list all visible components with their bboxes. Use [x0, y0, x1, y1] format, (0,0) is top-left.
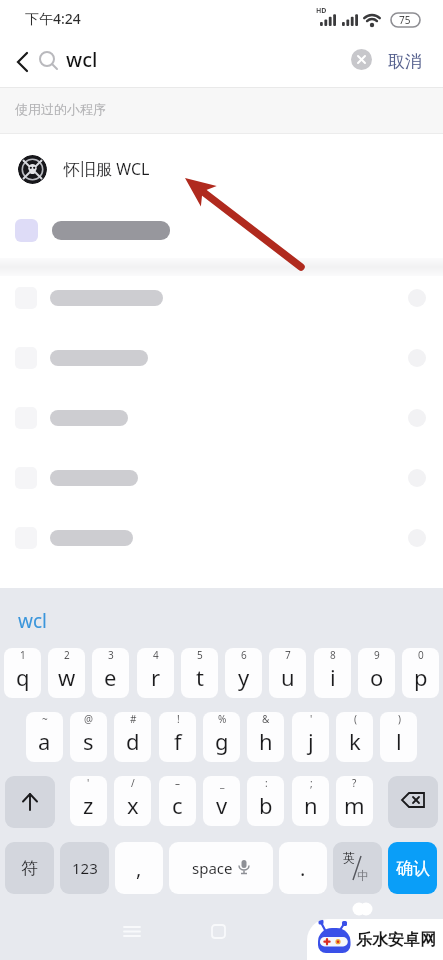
- button[interactable]: 符: [5, 842, 54, 894]
- button[interactable]: –: [159, 776, 196, 826]
- button[interactable]: 确认: [388, 842, 437, 894]
- staticText: ?: [352, 776, 357, 790]
- button[interactable]: 3: [92, 648, 129, 698]
- button[interactable]: [388, 776, 438, 828]
- staticText: q: [16, 662, 30, 692]
- button[interactable]: #: [114, 712, 151, 762]
- staticText: ,: [136, 855, 142, 882]
- button[interactable]: space: [169, 842, 273, 894]
- button[interactable]: ?: [336, 776, 373, 826]
- button[interactable]: [0, 276, 443, 336]
- button[interactable]: 4: [137, 648, 174, 698]
- staticText: ~: [42, 712, 48, 726]
- button[interactable]: :: [247, 776, 284, 826]
- button[interactable]: ': [70, 776, 107, 826]
- button[interactable]: [0, 396, 443, 456]
- staticText: ': [87, 776, 90, 790]
- staticText: 0: [418, 648, 424, 662]
- button[interactable]: ,: [115, 842, 163, 894]
- button[interactable]: %: [203, 712, 240, 762]
- button[interactable]: 5: [181, 648, 218, 698]
- staticText: 怀旧服 WCL: [64, 158, 150, 180]
- staticText: 乐水安卓网: [356, 930, 436, 950]
- button[interactable]: [0, 516, 443, 576]
- button[interactable]: 8: [314, 648, 351, 698]
- staticText: v: [216, 790, 228, 820]
- staticText: u: [281, 662, 295, 692]
- staticText: 符: [21, 858, 38, 879]
- button[interactable]: 0: [402, 648, 439, 698]
- staticText: /: [131, 776, 135, 790]
- staticText: i: [330, 662, 336, 692]
- button[interactable]: 1: [4, 648, 41, 698]
- button[interactable]: [0, 456, 443, 516]
- button[interactable]: _: [203, 776, 240, 826]
- staticText: HD: [316, 6, 327, 16]
- staticText: #: [130, 712, 137, 726]
- staticText: c: [172, 790, 183, 820]
- staticText: p: [414, 662, 428, 692]
- button[interactable]: [351, 49, 372, 70]
- staticText: l: [396, 726, 402, 756]
- button[interactable]: /: [114, 776, 151, 826]
- staticText: 中: [357, 868, 369, 883]
- button[interactable]: .: [279, 842, 327, 894]
- staticText: 英: [343, 850, 355, 865]
- staticText: 1: [20, 648, 26, 662]
- staticText: e: [104, 662, 117, 692]
- staticText: 123: [72, 858, 98, 878]
- staticText: 使用过的小程序: [15, 101, 106, 117]
- button[interactable]: 怀旧服 WCL: [0, 134, 443, 204]
- staticText: o: [370, 662, 384, 692]
- staticText: j: [308, 726, 314, 756]
- staticText: s: [83, 726, 94, 756]
- button[interactable]: 123: [60, 842, 109, 894]
- button[interactable]: 7: [269, 648, 306, 698]
- staticText: space: [192, 858, 233, 878]
- button[interactable]: [0, 336, 443, 396]
- button[interactable]: @: [70, 712, 107, 762]
- button[interactable]: 2: [48, 648, 85, 698]
- staticText: 7: [285, 648, 291, 662]
- button[interactable]: ;: [292, 776, 329, 826]
- button[interactable]: &: [247, 712, 284, 762]
- button[interactable]: ': [292, 712, 329, 762]
- staticText: wcl: [66, 46, 98, 73]
- staticText: 5: [197, 648, 203, 662]
- staticText: b: [259, 790, 273, 820]
- staticText: ): [398, 712, 401, 726]
- staticText: .: [300, 855, 306, 882]
- button[interactable]: 乐水安卓网: [307, 919, 443, 960]
- staticText: y: [238, 662, 250, 692]
- staticText: :: [265, 776, 268, 790]
- staticText: 3: [108, 648, 114, 662]
- staticText: 确认: [396, 858, 430, 879]
- staticText: ': [310, 712, 313, 726]
- button[interactable]: [14, 51, 34, 73]
- button[interactable]: [0, 204, 443, 258]
- staticText: g: [215, 726, 229, 756]
- button[interactable]: 英: [333, 842, 382, 894]
- staticText: 2: [64, 648, 70, 662]
- staticText: w: [58, 662, 76, 692]
- staticText: 取消: [388, 51, 422, 72]
- staticText: m: [344, 790, 365, 820]
- staticText: r: [151, 662, 161, 692]
- button[interactable]: [5, 776, 55, 828]
- staticText: 9: [374, 648, 380, 662]
- staticText: –: [175, 776, 180, 790]
- button[interactable]: (: [336, 712, 373, 762]
- button[interactable]: !: [159, 712, 196, 762]
- staticText: &: [262, 712, 270, 726]
- staticText: a: [38, 726, 51, 756]
- staticText: d: [126, 726, 140, 756]
- staticText: !: [177, 712, 180, 726]
- button[interactable]: 6: [225, 648, 262, 698]
- staticText: @: [84, 712, 93, 726]
- button[interactable]: 取消: [388, 36, 443, 87]
- staticText: 4: [153, 648, 159, 662]
- staticText: n: [304, 790, 318, 820]
- button[interactable]: 9: [358, 648, 395, 698]
- button[interactable]: ~: [26, 712, 63, 762]
- button[interactable]: ): [380, 712, 417, 762]
